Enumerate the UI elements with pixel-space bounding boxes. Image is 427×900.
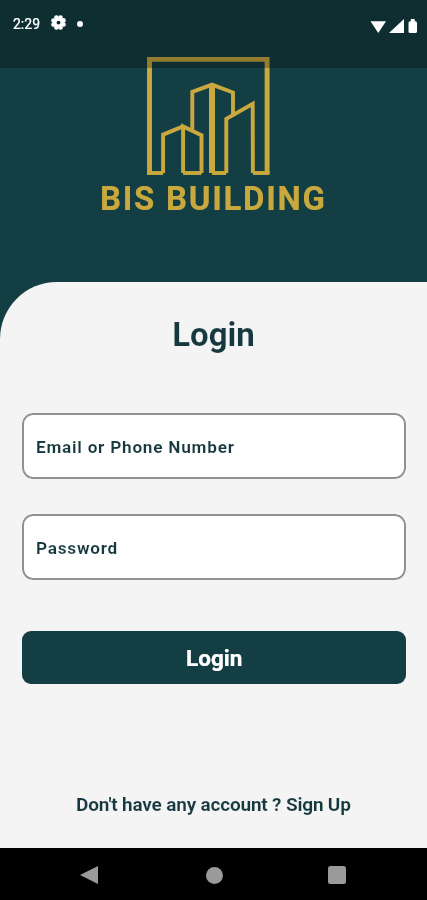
staticText: BIS BUILDING	[100, 179, 327, 218]
staticText: Password	[36, 538, 119, 558]
staticText: Email or Phone Number	[36, 437, 235, 457]
button[interactable]: Password	[22, 514, 406, 580]
button[interactable]: Email or Phone Number	[22, 413, 406, 479]
button[interactable]: Don't have any account ? Sign Up	[72, 791, 355, 817]
staticText: 2:29	[13, 16, 40, 32]
button[interactable]: Back	[66, 852, 112, 898]
button[interactable]: Recent apps	[314, 852, 360, 898]
staticText: Login	[186, 645, 243, 671]
button[interactable]: Home	[191, 852, 237, 898]
button[interactable]: Login	[22, 631, 406, 684]
staticText: Login	[0, 315, 427, 354]
